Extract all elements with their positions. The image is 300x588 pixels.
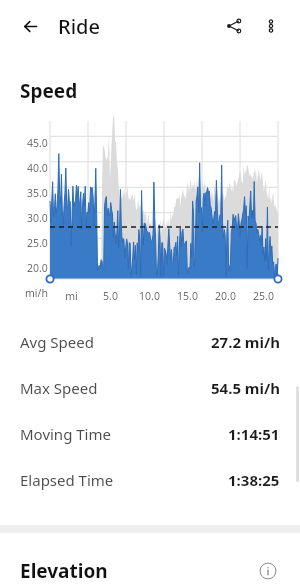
button[interactable]: Back [12,8,48,44]
staticText: 1:38:25 [228,470,280,490]
staticText: Speed [20,78,78,104]
button[interactable]: Max Speed [0,365,300,411]
button[interactable]: Elapsed Time [0,457,300,503]
staticText: 40.0 [27,161,48,175]
staticText: Elevation [20,558,108,584]
button[interactable]: Share [216,8,252,44]
staticText: 25.0 [27,236,48,250]
staticText: 30.0 [27,211,48,225]
staticText: Moving Time [20,424,111,444]
staticText: Ride [58,13,100,40]
button[interactable]: Moving Time [0,411,300,457]
staticText: 20.0 [27,261,48,275]
staticText: mi/h [25,286,48,300]
staticText: 35.0 [27,186,48,200]
staticText: 20.0 [215,289,236,303]
staticText: 45.0 [27,136,48,150]
staticText: Max Speed [20,378,98,398]
staticText: Avg Speed [20,332,94,352]
staticText: 25.0 [253,289,274,303]
staticText: 15.0 [177,289,198,303]
staticText: 54.5 mi/h [211,378,280,398]
staticText: 27.2 mi/h [211,332,280,352]
staticText: 10.0 [139,289,160,303]
staticText: Elapsed Time [20,470,114,490]
button[interactable]: Avg Speed [0,319,300,365]
staticText: mi [65,289,78,303]
staticText: 5.0 [103,289,118,303]
button[interactable]: More options [254,9,288,43]
button[interactable]: Elevation info [254,557,282,585]
staticText: 1:14:51 [228,424,280,444]
